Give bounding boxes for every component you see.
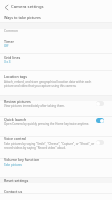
button[interactable] bbox=[0, 98, 112, 113]
staticText: Off bbox=[4, 44, 9, 48]
staticText: 3 x 3 bbox=[4, 60, 11, 64]
staticText: Timer bbox=[4, 39, 14, 44]
button[interactable] bbox=[0, 154, 112, 172]
button[interactable]: Disabled bbox=[96, 140, 104, 145]
staticText: Contact us bbox=[4, 189, 23, 194]
staticText: Volume key function bbox=[4, 157, 40, 162]
staticText: Open Camera by quickly pressing the Home… bbox=[4, 122, 90, 126]
staticText: Review pictures bbox=[4, 99, 31, 104]
button[interactable] bbox=[0, 36, 112, 52]
button[interactable]: Enabled bbox=[96, 118, 104, 123]
staticText: Reset settings bbox=[4, 178, 29, 183]
button[interactable] bbox=[0, 177, 112, 187]
button[interactable]: Navigate up bbox=[1, 2, 12, 13]
button[interactable] bbox=[0, 14, 112, 23]
staticText: Location tags bbox=[4, 74, 28, 79]
staticText: Quick launch bbox=[4, 117, 27, 122]
button[interactable] bbox=[0, 133, 112, 154]
button[interactable] bbox=[0, 53, 112, 69]
staticText: Take pictures bbox=[4, 163, 22, 167]
staticText: Grid lines bbox=[4, 55, 21, 60]
staticText: Camera settings bbox=[11, 4, 44, 10]
staticText: Attach, embed, and store geographical lo… bbox=[4, 80, 101, 88]
staticText: Common bbox=[4, 29, 18, 33]
staticText: Voice control bbox=[4, 136, 27, 141]
staticText: Ways to take pictures bbox=[4, 15, 41, 20]
button[interactable] bbox=[0, 114, 112, 133]
staticText: Take pictures by saying "Smile", "Cheese… bbox=[4, 142, 101, 150]
button[interactable]: Disabled bbox=[96, 101, 104, 106]
staticText: View pictures immediately after taking t… bbox=[4, 104, 65, 108]
button[interactable] bbox=[0, 187, 112, 198]
button[interactable] bbox=[0, 69, 112, 93]
